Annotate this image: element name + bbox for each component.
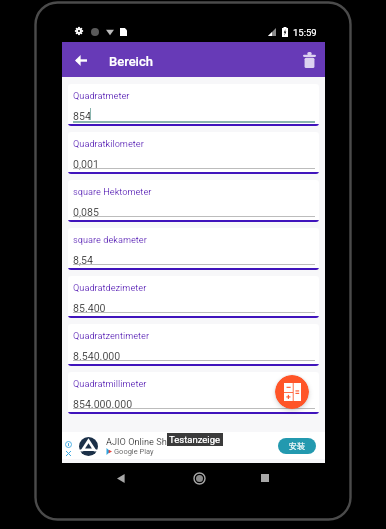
staticText: 85.400 bbox=[73, 302, 106, 314]
staticText: 0,085 bbox=[73, 206, 99, 218]
staticText: Google Play bbox=[114, 447, 154, 456]
button[interactable]: Quadratkilometer bbox=[68, 132, 319, 174]
button[interactable]: 安装 bbox=[278, 438, 316, 454]
button[interactable]: Quadratzentimeter bbox=[68, 324, 319, 366]
button[interactable]: Quadratmillimeter bbox=[68, 372, 319, 414]
button[interactable]: Calculator bbox=[275, 375, 309, 409]
staticText: 8.540.000 bbox=[73, 350, 121, 362]
staticText: Quadratmeter bbox=[73, 90, 130, 101]
staticText: AJIO Online Sh bbox=[106, 436, 167, 447]
staticText: 854.000.000 bbox=[73, 398, 133, 410]
staticText: Quadratdezimeter bbox=[73, 282, 147, 293]
button[interactable]: Recents bbox=[254, 467, 276, 489]
staticText: Quadratzentimeter bbox=[73, 330, 150, 341]
staticText: 安装 bbox=[289, 441, 305, 451]
staticText: 8,54 bbox=[73, 254, 93, 266]
button[interactable]: Back bbox=[71, 50, 91, 70]
staticText: 0,001 bbox=[73, 158, 99, 170]
staticText: 854 bbox=[73, 110, 91, 122]
button[interactable]: Delete bbox=[299, 50, 319, 70]
staticText: Bereich bbox=[109, 54, 153, 69]
staticText: Quadratkilometer bbox=[73, 138, 144, 149]
button[interactable]: Back bbox=[110, 467, 132, 489]
button[interactable]: Home bbox=[188, 467, 210, 489]
button[interactable]: Quadratmeter bbox=[68, 84, 319, 126]
staticText: square Hektometer bbox=[73, 186, 152, 197]
staticText: 15:59 bbox=[293, 27, 317, 38]
button[interactable]: square Hektometer bbox=[68, 180, 319, 222]
button[interactable]: Quadratdezimeter bbox=[68, 276, 319, 318]
staticText: square dekameter bbox=[73, 234, 147, 245]
button[interactable]: square dekameter bbox=[68, 228, 319, 270]
staticText: Testanzeige bbox=[169, 434, 221, 445]
staticText: Quadratmillimeter bbox=[73, 378, 147, 389]
